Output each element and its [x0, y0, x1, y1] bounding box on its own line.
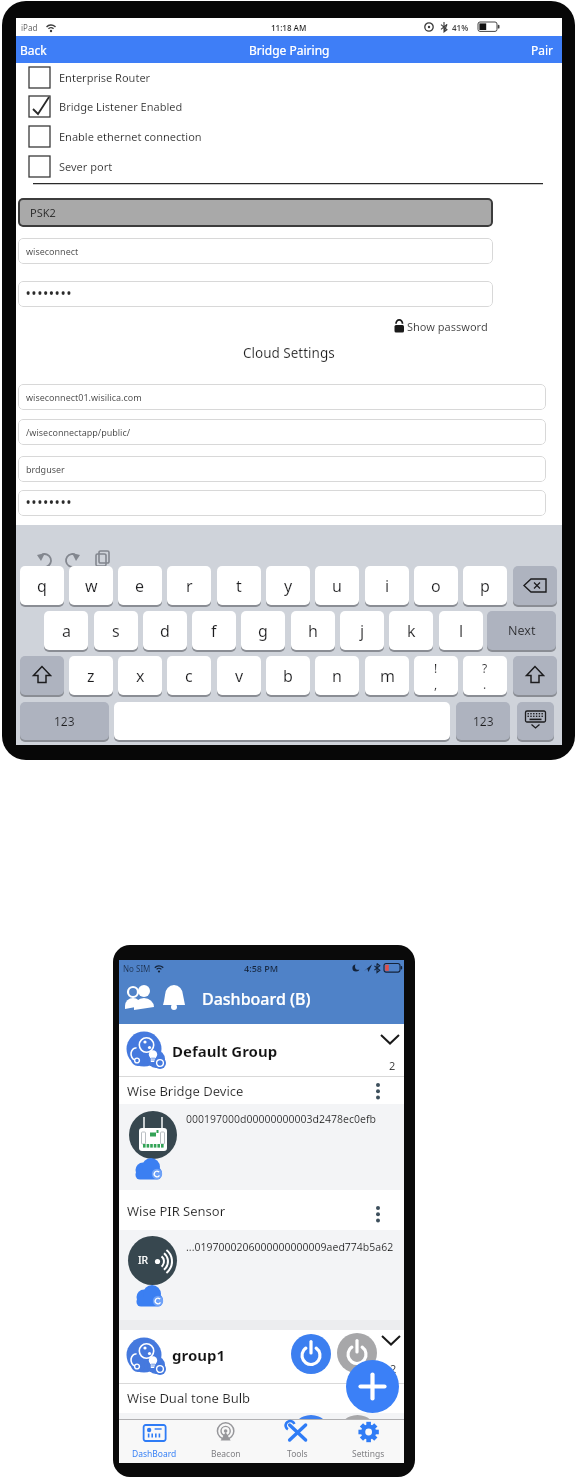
button[interactable] — [517, 702, 554, 742]
button[interactable] — [346, 1360, 399, 1413]
staticText: Bridge Pairing — [249, 42, 330, 58]
button[interactable] — [119, 1104, 404, 1190]
button[interactable]: d — [143, 611, 187, 652]
staticText: •••••••• — [26, 286, 73, 302]
button[interactable] — [119, 1330, 404, 1383]
button[interactable]: v — [217, 656, 261, 697]
button[interactable] — [20, 656, 64, 697]
button[interactable]: Sever port — [29, 156, 259, 177]
button[interactable]: f — [192, 611, 236, 652]
staticText: Enterprise Router — [59, 70, 151, 85]
button[interactable]: u — [315, 566, 359, 607]
button[interactable]: s — [94, 611, 138, 652]
button[interactable] — [513, 656, 557, 697]
staticText: s — [112, 620, 120, 642]
staticText: 11:18 AM — [271, 22, 307, 33]
staticText: Show password — [407, 319, 488, 334]
button[interactable] — [291, 1334, 331, 1374]
button[interactable]: /wiseconnectapp/public/ — [18, 419, 546, 445]
button[interactable]: y — [266, 566, 310, 607]
button[interactable]: 123 — [456, 702, 510, 742]
button[interactable]: j — [340, 611, 384, 652]
button[interactable]: Beacon — [190, 1419, 261, 1463]
staticText: IR — [138, 1253, 149, 1267]
button[interactable]: o — [414, 566, 458, 607]
button[interactable]: p — [463, 566, 507, 607]
button[interactable]: i — [365, 566, 409, 607]
staticText: Back — [20, 42, 47, 58]
staticText: u — [332, 575, 342, 597]
button[interactable]: wiseconnect01.wisilica.com — [18, 384, 546, 410]
button[interactable]: e — [118, 566, 162, 607]
staticText: Bridge Listener Enabled — [59, 99, 183, 114]
button[interactable]: Show password — [393, 318, 493, 334]
staticText: p — [480, 575, 490, 597]
staticText: e — [135, 575, 145, 597]
staticText: d — [160, 620, 170, 642]
button[interactable]: Enterprise Router — [29, 67, 259, 88]
staticText: 2 — [389, 1058, 396, 1073]
button[interactable] — [114, 702, 450, 742]
button[interactable] — [119, 1190, 404, 1230]
button[interactable]: m — [365, 656, 409, 697]
button[interactable]: Enable ethernet connection — [29, 126, 259, 147]
button[interactable] — [119, 1383, 404, 1413]
button[interactable]: t — [217, 566, 261, 607]
staticText: k — [407, 620, 416, 642]
staticText: g — [258, 620, 268, 642]
button[interactable]: 123 — [20, 702, 109, 742]
button[interactable] — [337, 1333, 377, 1373]
staticText: 2 — [390, 1361, 397, 1376]
staticText: wiseconnect — [26, 245, 79, 257]
staticText: Cloud Settings — [243, 344, 335, 362]
staticText: , — [434, 676, 438, 692]
button[interactable]: q — [20, 566, 64, 607]
staticText: Sever port — [59, 159, 113, 174]
button[interactable]: w — [69, 566, 113, 607]
staticText: wiseconnect01.wisilica.com — [26, 391, 142, 403]
staticText: Settings — [352, 1448, 385, 1460]
staticText: v — [235, 665, 244, 687]
button[interactable]: h — [291, 611, 335, 652]
staticText: Wise Bridge Device — [127, 1082, 244, 1100]
staticText: •••••••• — [26, 495, 73, 511]
button[interactable]: x — [118, 656, 162, 697]
staticText: c — [185, 665, 193, 687]
button[interactable]: ? — [463, 656, 507, 697]
button[interactable]: DashBoard — [119, 1419, 190, 1463]
staticText: Dashboard (B) — [202, 988, 311, 1010]
button[interactable]: c — [167, 656, 211, 697]
button[interactable]: Settings — [333, 1419, 404, 1463]
button[interactable]: wiseconnect — [18, 238, 493, 264]
button[interactable]: Tools — [262, 1419, 333, 1463]
staticText: h — [308, 620, 318, 642]
button[interactable] — [513, 566, 557, 607]
staticText: /wiseconnectapp/public/ — [26, 426, 131, 438]
button[interactable] — [119, 1024, 404, 1077]
staticText: Wise PIR Sensor — [127, 1202, 226, 1220]
staticText: Enable ethernet connection — [59, 129, 202, 144]
button[interactable]: k — [389, 611, 433, 652]
staticText: 123 — [473, 713, 494, 729]
button[interactable]: g — [241, 611, 285, 652]
button[interactable]: Back — [20, 36, 70, 63]
button[interactable]: ! — [414, 656, 458, 697]
staticText: q — [37, 575, 47, 597]
button[interactable]: •••••••• — [18, 490, 546, 516]
button[interactable]: •••••••• — [18, 281, 493, 307]
button[interactable]: Bridge Listener Enabled — [29, 96, 259, 117]
button[interactable]: n — [315, 656, 359, 697]
button[interactable]: l — [439, 611, 483, 652]
button[interactable]: Next — [487, 611, 556, 652]
button[interactable]: r — [167, 566, 211, 607]
button[interactable]: Pair — [512, 36, 554, 63]
button[interactable] — [119, 1077, 404, 1104]
button[interactable]: PSK2 — [18, 198, 493, 227]
button[interactable]: brdguser — [18, 456, 546, 482]
button[interactable]: z — [69, 656, 113, 697]
button[interactable]: b — [266, 656, 310, 697]
button[interactable] — [119, 1230, 404, 1320]
button[interactable]: a — [44, 611, 88, 652]
staticText: DashBoard — [132, 1448, 177, 1460]
staticText: o — [431, 575, 441, 597]
